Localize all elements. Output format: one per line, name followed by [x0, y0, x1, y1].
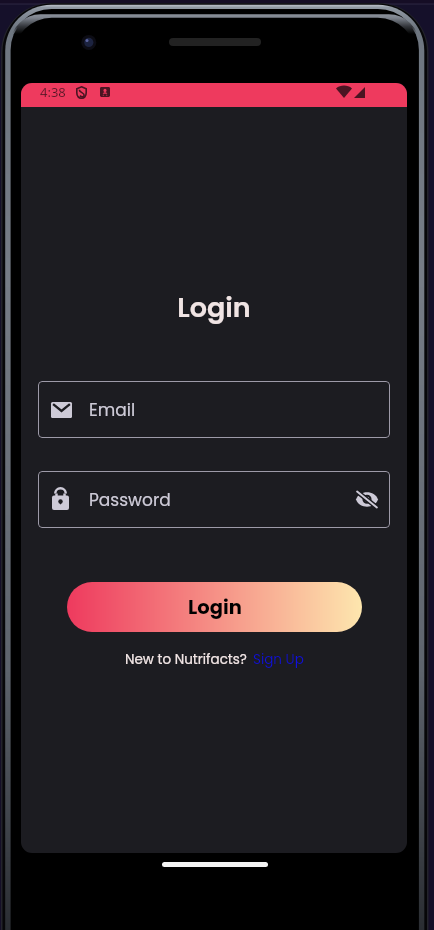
- button[interactable]: Password: [38, 471, 390, 528]
- staticText: Password: [89, 488, 171, 512]
- staticText: Login: [38, 289, 390, 327]
- button[interactable]: Login: [67, 582, 362, 632]
- button[interactable]: Sign Up: [253, 650, 304, 669]
- button[interactable]: Email: [38, 381, 390, 438]
- staticText: Email: [89, 398, 136, 422]
- button[interactable]: Show password: [350, 485, 380, 515]
- staticText: 4:38: [40, 83, 66, 101]
- staticText: Login: [188, 594, 242, 621]
- staticText: New to Nutrifacts?: [125, 650, 247, 669]
